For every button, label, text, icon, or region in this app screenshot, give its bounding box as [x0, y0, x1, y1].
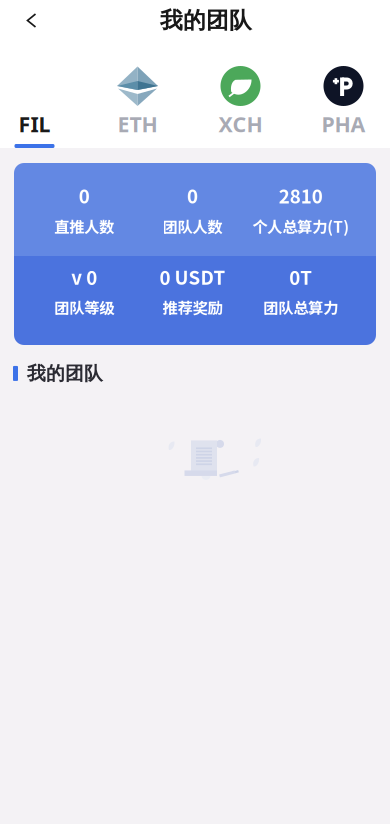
staticText: 0	[79, 182, 90, 209]
staticText: 团队人数	[162, 215, 222, 237]
staticText: 团队总算力	[263, 296, 338, 318]
button[interactable]: PHA	[292, 41, 390, 148]
staticText: ETH	[117, 110, 157, 138]
staticText: 我的团队	[160, 7, 252, 34]
staticText: 团队等级	[54, 296, 114, 318]
staticText: 推荐奖励	[162, 296, 222, 318]
button[interactable]: FIL	[0, 41, 86, 148]
staticText: 0T	[289, 263, 312, 290]
button[interactable]: Back	[11, 5, 51, 36]
staticText: 0	[187, 182, 198, 209]
staticText: 0 USDT	[159, 263, 225, 290]
button[interactable]: XCH	[189, 41, 292, 148]
staticText: PHA	[321, 110, 365, 138]
button[interactable]: ETH	[86, 41, 189, 148]
staticText: XCH	[218, 110, 262, 138]
staticText: FIL	[18, 110, 50, 138]
staticText: v 0	[71, 263, 97, 290]
staticText: 个人总算力(T)	[252, 215, 349, 237]
staticText: 我的团队	[27, 362, 103, 385]
staticText: 直推人数	[54, 215, 114, 237]
staticText: 2810	[279, 182, 323, 209]
